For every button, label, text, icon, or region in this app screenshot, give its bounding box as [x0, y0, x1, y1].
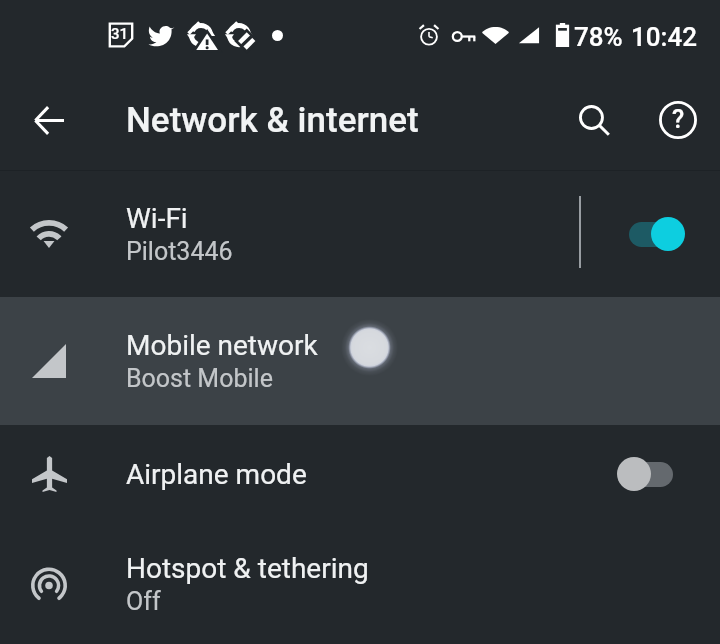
- staticText: ?: [672, 105, 685, 134]
- button[interactable]: Mobile network: [0, 297, 720, 425]
- staticText: 31: [111, 25, 129, 43]
- button[interactable]: Hotspot & tethering: [0, 523, 720, 644]
- staticText: Wi-Fi: [126, 202, 188, 235]
- staticText: Off: [126, 587, 161, 616]
- button[interactable]: Search: [558, 84, 630, 156]
- staticText: 78%: [574, 22, 623, 52]
- button[interactable]: Navigate up: [14, 85, 84, 155]
- staticText: Airplane mode: [126, 458, 307, 491]
- button[interactable]: Wi-Fi toggle: [629, 216, 685, 252]
- button[interactable]: Help: [642, 84, 714, 156]
- staticText: Boost Mobile: [126, 364, 273, 393]
- button[interactable]: Airplane mode: [0, 425, 720, 523]
- button[interactable]: Airplane mode toggle: [617, 456, 673, 492]
- button[interactable]: Wi-Fi: [0, 171, 720, 297]
- staticText: Pilot3446: [126, 237, 233, 266]
- staticText: Mobile network: [126, 329, 318, 362]
- staticText: Hotspot & tethering: [126, 552, 369, 585]
- staticText: 10:42: [631, 22, 698, 52]
- staticText: Network & internet: [126, 100, 419, 141]
